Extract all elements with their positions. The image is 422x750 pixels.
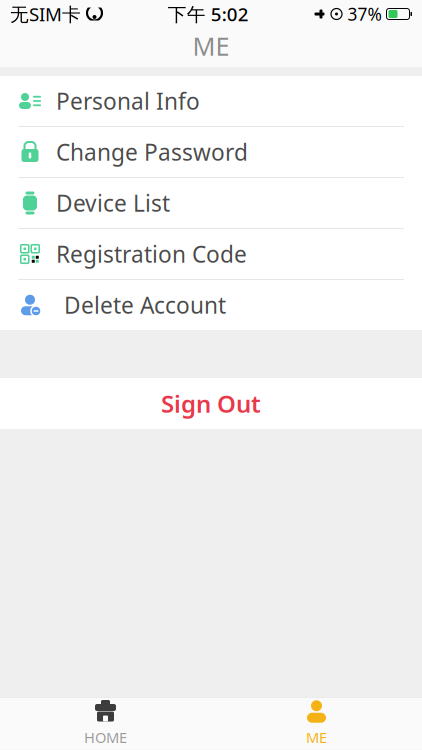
staticText: Change Password bbox=[56, 137, 248, 167]
staticText: Device List bbox=[56, 188, 170, 218]
staticText: ME bbox=[306, 727, 327, 747]
staticText: Personal Info bbox=[56, 86, 200, 116]
staticText: Delete Account bbox=[64, 290, 226, 320]
staticText: 下午 5:02 bbox=[168, 2, 249, 26]
button[interactable]: HOME bbox=[0, 698, 211, 750]
button[interactable]: Registration Code bbox=[0, 229, 422, 279]
staticText: Sign Out bbox=[161, 388, 261, 419]
button[interactable]: Sign Out bbox=[0, 378, 422, 429]
button[interactable]: Delete Account bbox=[0, 280, 422, 330]
staticText: ME bbox=[192, 29, 229, 63]
staticText: 无SIM卡 bbox=[10, 2, 81, 26]
button[interactable]: Personal Info bbox=[0, 76, 422, 126]
staticText: 37% bbox=[347, 2, 381, 25]
staticText: HOME bbox=[84, 727, 127, 747]
button[interactable]: Change Password bbox=[0, 127, 422, 177]
staticText: Registration Code bbox=[56, 239, 247, 269]
button[interactable]: ME bbox=[211, 698, 422, 750]
button[interactable]: Device List bbox=[0, 178, 422, 228]
